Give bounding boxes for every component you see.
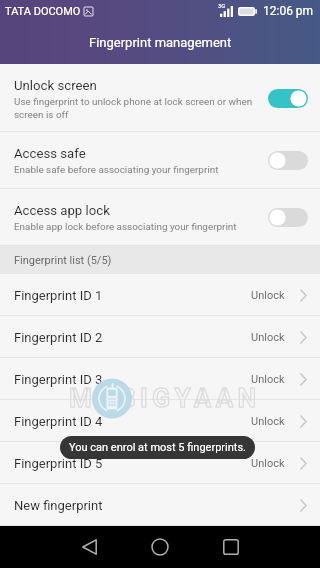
staticText: Unlock [251,289,285,302]
button[interactable]: Recents [210,526,252,568]
staticText: Use fingerprint to unlock phone at lock … [14,96,253,120]
staticText: Fingerprint ID 5 [14,456,103,471]
button[interactable]: Home [139,526,181,568]
staticText: Unlock [251,373,285,386]
button[interactable]: Fingerprint ID 2 [0,316,320,358]
staticText: Unlock [251,331,285,344]
button[interactable]: Fingerprint ID 4 [0,400,320,442]
staticText: Enable safe before associating your fing… [14,164,219,176]
button[interactable]: Toggle off [268,151,308,170]
button[interactable]: Access safe [0,132,320,189]
button[interactable]: Toggle on [268,89,308,108]
button[interactable]: New fingerprint [0,484,320,526]
staticText: New fingerprint [14,498,103,513]
staticText: Access app lock [14,203,110,218]
staticText: 3G [218,2,226,9]
button[interactable]: Fingerprint ID 5 [0,442,320,484]
staticText: Fingerprint ID 3 [14,372,103,387]
button[interactable]: Access app lock [0,189,320,246]
staticText: Fingerprint management [89,35,232,50]
staticText: MOBIGYAAN [69,383,261,413]
staticText: Fingerprint list (5/5) [14,254,112,267]
staticText: You can enrol at most 5 fingerprints. [69,441,246,454]
staticText: 12:06 pm [263,4,314,18]
staticText: Fingerprint ID 1 [14,288,103,303]
staticText: Unlock screen [14,78,97,93]
staticText: Unlock [251,415,285,428]
staticText: Access safe [14,146,86,161]
staticText: TATA DOCOMO [5,5,81,18]
button[interactable]: Fingerprint ID 3 [0,358,320,400]
staticText: Unlock [251,457,285,470]
staticText: Fingerprint ID 4 [14,414,103,429]
button[interactable]: Back [68,526,110,568]
button[interactable]: Fingerprint ID 1 [0,274,320,316]
staticText: Fingerprint ID 2 [14,330,103,345]
button[interactable]: Unlock screen [0,64,320,132]
button[interactable]: Toggle off [268,208,308,227]
staticText: Enable app lock before associating your … [14,221,237,233]
